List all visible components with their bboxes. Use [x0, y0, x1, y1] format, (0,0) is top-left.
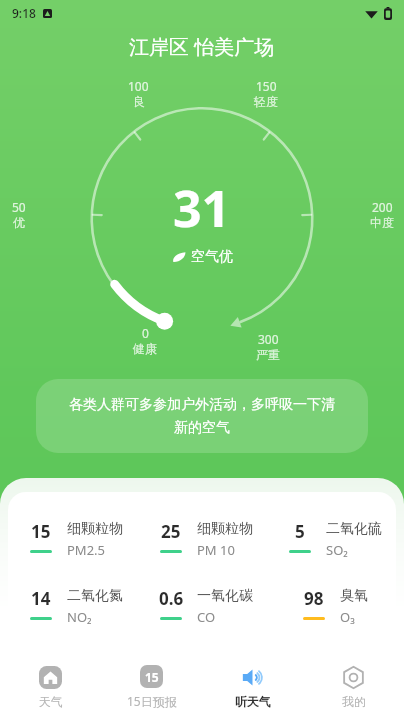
staticText: NO₂ [67, 608, 92, 626]
staticText: 轻度 [254, 94, 278, 109]
staticText: 听天气 [235, 694, 271, 709]
staticText: 98 [304, 587, 324, 610]
staticText: 二氧化硫 [326, 520, 382, 538]
staticText: 良 [133, 94, 145, 109]
staticText: 细颗粒物 [67, 520, 123, 538]
staticText: 细颗粒物 [197, 520, 253, 538]
staticText: 一氧化碳 [197, 587, 253, 605]
button[interactable]: 15 [8, 492, 396, 654]
staticText: 31 [173, 174, 231, 242]
staticText: 15 [31, 520, 51, 543]
staticText: 空气优 [191, 248, 233, 266]
button[interactable]: 各类人群可多参加户外活动，多呼吸一下清新的空气 [36, 379, 368, 453]
staticText: 300 [258, 331, 279, 347]
staticText: 150 [256, 78, 277, 94]
staticText: 江岸区 怡美广场 [129, 33, 275, 60]
staticText: CO [197, 608, 216, 626]
staticText: 15日预报 [127, 693, 177, 709]
staticText: 优 [13, 215, 25, 230]
staticText: 我的 [342, 694, 366, 709]
staticText: 健康 [133, 341, 157, 356]
staticText: 200 [372, 199, 393, 215]
staticText: 100 [128, 78, 149, 94]
button[interactable]: 听天气 [202, 654, 303, 720]
button[interactable]: 天气 [0, 654, 101, 720]
staticText: 14 [31, 587, 51, 610]
staticText: 25 [161, 520, 181, 543]
staticText: 9:18 [12, 5, 36, 21]
staticText: 5 [295, 520, 305, 543]
staticText: 15 [145, 669, 159, 685]
staticText: 臭氧 [340, 587, 368, 605]
staticText: 中度 [370, 215, 394, 230]
staticText: 50 [12, 199, 26, 215]
button[interactable]: 15日预报 [101, 654, 202, 720]
staticText: O₃ [340, 608, 355, 626]
staticText: 天气 [39, 694, 63, 709]
button[interactable]: 我的 [303, 654, 404, 720]
staticText: PM 10 [197, 541, 235, 559]
staticText: SO₂ [326, 541, 348, 559]
staticText: 各类人群可多参加户外活动，多呼吸一下清新的空气 [66, 396, 338, 436]
staticText: 严重 [256, 347, 280, 362]
staticText: PM2.5 [67, 541, 106, 559]
staticText: 二氧化氮 [67, 587, 123, 605]
staticText: 0.6 [159, 587, 184, 610]
staticText: 0 [142, 325, 149, 341]
